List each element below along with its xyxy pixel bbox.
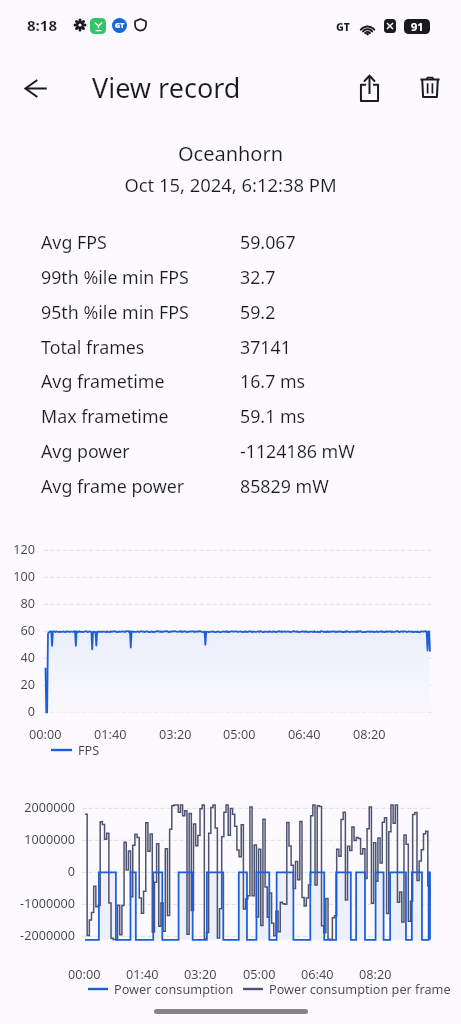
staticText: 01:40: [94, 725, 127, 742]
button[interactable]: Max frametime: [0, 399, 461, 433]
staticText: 8:18: [27, 15, 57, 35]
staticText: Oct 15, 2024, 6:12:38 PM: [0, 172, 461, 197]
staticText: 80: [0, 594, 35, 611]
staticText: Power consumption: [114, 980, 234, 997]
button[interactable]: Share: [345, 64, 393, 112]
staticText: 03:20: [184, 965, 217, 982]
staticText: Avg FPS: [41, 230, 107, 254]
button[interactable]: 95th %ile min FPS: [0, 295, 461, 329]
staticText: GT: [115, 21, 125, 31]
staticText: 08:20: [353, 725, 386, 742]
staticText: 01:40: [126, 965, 159, 982]
staticText: 0: [0, 862, 75, 879]
staticText: 100: [0, 567, 35, 584]
staticText: 0: [0, 702, 35, 719]
staticText: Avg power: [41, 439, 130, 463]
staticText: Avg frame power: [41, 474, 185, 498]
staticText: FPS: [78, 741, 100, 758]
staticText: Max frametime: [41, 404, 169, 428]
staticText: 20: [0, 675, 35, 692]
staticText: Avg frametime: [41, 369, 165, 393]
button[interactable]: Back: [12, 64, 60, 112]
staticText: 37141: [240, 335, 291, 359]
staticText: -1000000: [0, 894, 75, 911]
staticText: 00:00: [29, 725, 62, 742]
staticText: GT: [336, 20, 350, 34]
staticText: 32.7: [240, 265, 276, 289]
staticText: 120: [0, 540, 35, 557]
button[interactable]: Avg frametime: [0, 364, 461, 398]
staticText: 16.7 ms: [240, 369, 306, 393]
button[interactable]: Avg power: [0, 434, 461, 468]
staticText: 91: [411, 19, 424, 34]
staticText: 08:20: [359, 965, 392, 982]
staticText: 40: [0, 648, 35, 665]
staticText: 06:40: [288, 725, 321, 742]
staticText: -1124186 mW: [240, 439, 355, 463]
staticText: 85829 mW: [240, 474, 329, 498]
button[interactable]: Avg FPS: [0, 225, 461, 259]
staticText: -2000000: [0, 926, 75, 943]
staticText: 05:00: [243, 965, 276, 982]
staticText: 00:00: [68, 965, 101, 982]
button[interactable]: 99th %ile min FPS: [0, 260, 461, 294]
button[interactable]: Delete: [406, 63, 454, 111]
staticText: View record: [92, 69, 241, 106]
staticText: 99th %ile min FPS: [41, 265, 189, 289]
staticText: Power consumption per frame: [269, 980, 451, 997]
staticText: Total frames: [41, 335, 145, 359]
staticText: 59.2: [240, 300, 276, 324]
staticText: 05:00: [223, 725, 256, 742]
staticText: 95th %ile min FPS: [41, 300, 189, 324]
button[interactable]: Avg frame power: [0, 469, 461, 503]
button[interactable]: Total frames: [0, 330, 461, 364]
staticText: 59.1 ms: [240, 404, 306, 428]
staticText: 03:20: [159, 725, 192, 742]
staticText: 1000000: [0, 830, 75, 847]
staticText: 2000000: [0, 798, 75, 815]
staticText: 60: [0, 621, 35, 638]
staticText: 06:40: [301, 965, 334, 982]
staticText: 59.067: [240, 230, 296, 254]
staticText: Oceanhorn: [0, 140, 461, 167]
